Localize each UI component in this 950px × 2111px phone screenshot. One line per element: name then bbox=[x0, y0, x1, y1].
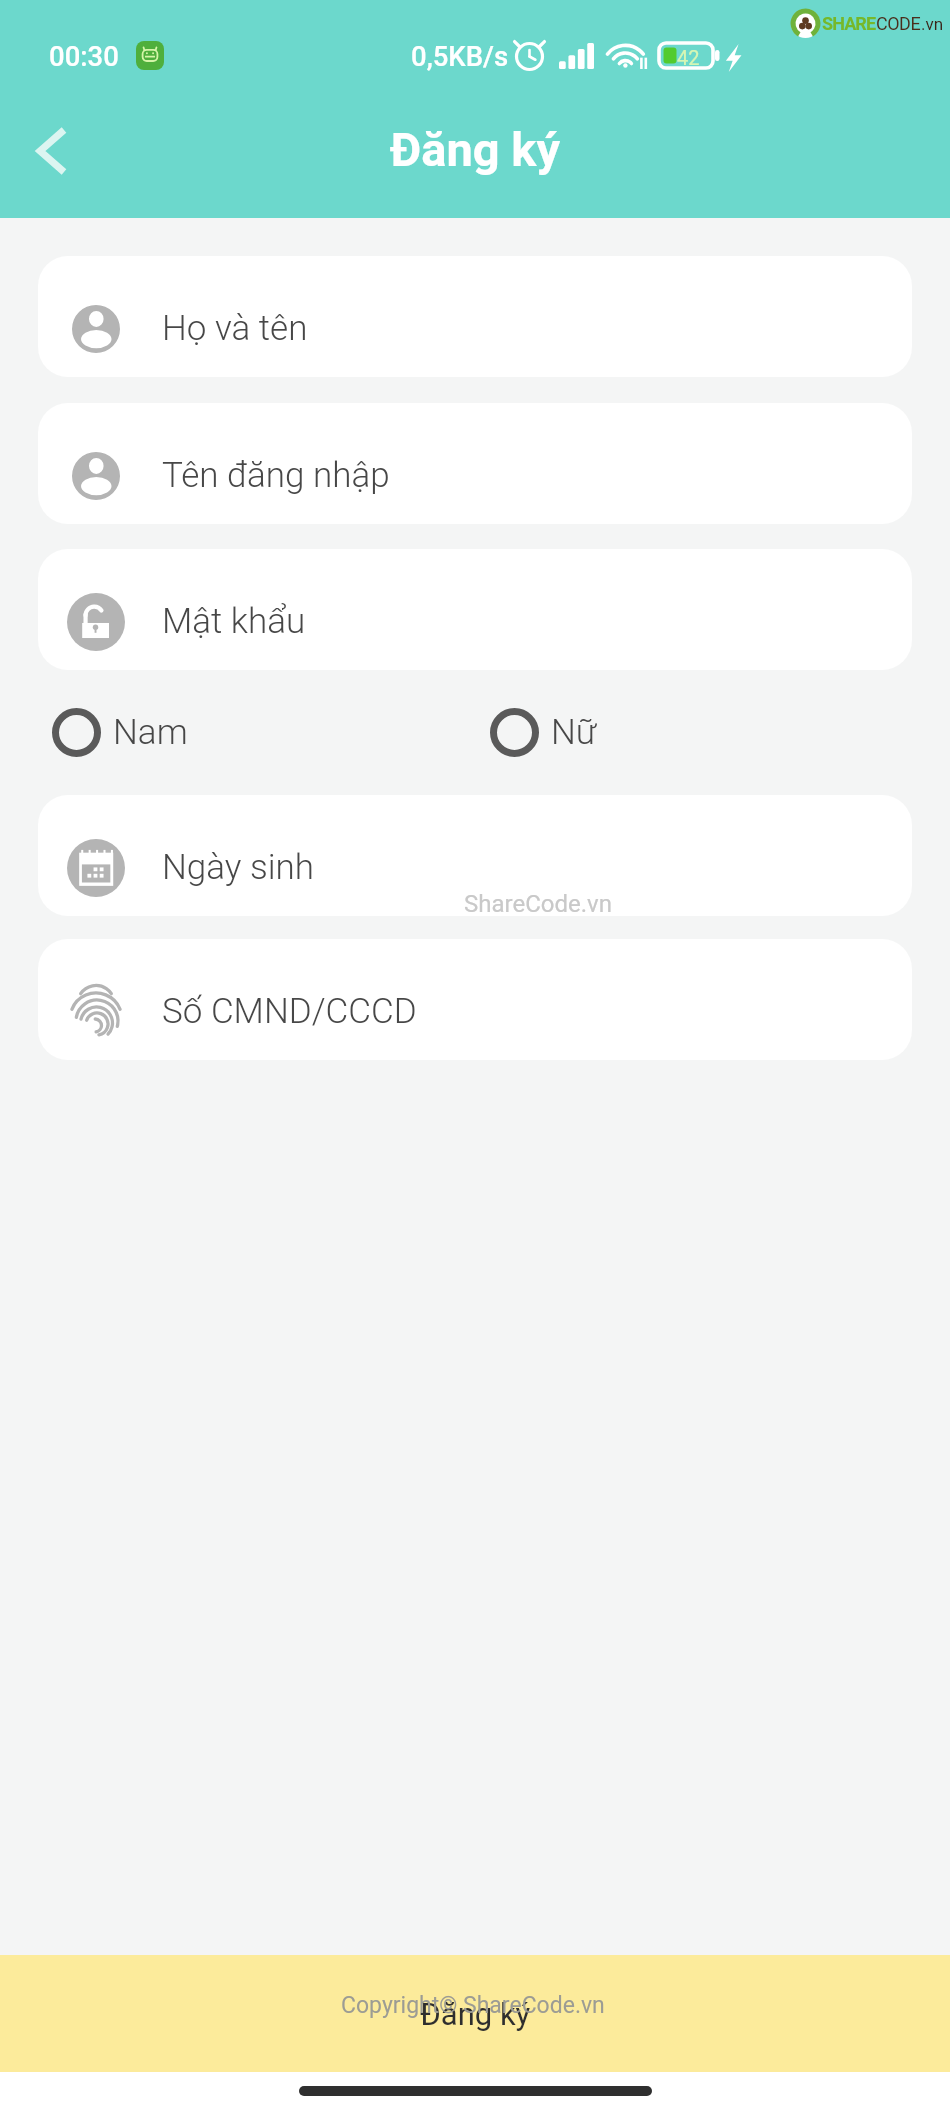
button[interactable]: Nam bbox=[52, 707, 188, 757]
staticText: Đăng ký bbox=[390, 122, 561, 177]
button[interactable]: Mật khẩu bbox=[38, 549, 912, 670]
staticText: Nam bbox=[113, 712, 188, 753]
button[interactable]: Đăng ký bbox=[0, 1955, 950, 2072]
button[interactable]: Tên đăng nhập bbox=[38, 403, 912, 524]
staticText: SHARE bbox=[822, 13, 876, 34]
button[interactable]: Nữ bbox=[490, 707, 597, 757]
staticText: 0,5KB/s bbox=[411, 40, 509, 72]
staticText: CODE bbox=[876, 13, 921, 34]
staticText: Số CMND/CCCD bbox=[162, 991, 417, 1032]
staticText: Ngày sinh bbox=[162, 847, 315, 888]
button[interactable]: Ngày sinh bbox=[38, 795, 912, 916]
staticText: 42 bbox=[677, 46, 700, 69]
staticText: Copyright© ShareCode.vn bbox=[341, 1992, 605, 2019]
staticText: Mật khẩu bbox=[162, 601, 306, 642]
staticText: .vn bbox=[921, 14, 944, 34]
staticText: Họ và tên bbox=[162, 308, 308, 349]
staticText: Đăng ký bbox=[420, 1996, 531, 2032]
staticText: Tên đăng nhập bbox=[162, 455, 390, 496]
staticText: ShareCode.vn bbox=[464, 890, 612, 918]
button[interactable]: Số CMND/CCCD bbox=[38, 939, 912, 1060]
staticText: 00:30 bbox=[49, 40, 119, 72]
button[interactable]: Họ và tên bbox=[38, 256, 912, 377]
button[interactable]: Back bbox=[0, 106, 90, 196]
staticText: Nữ bbox=[551, 712, 597, 753]
